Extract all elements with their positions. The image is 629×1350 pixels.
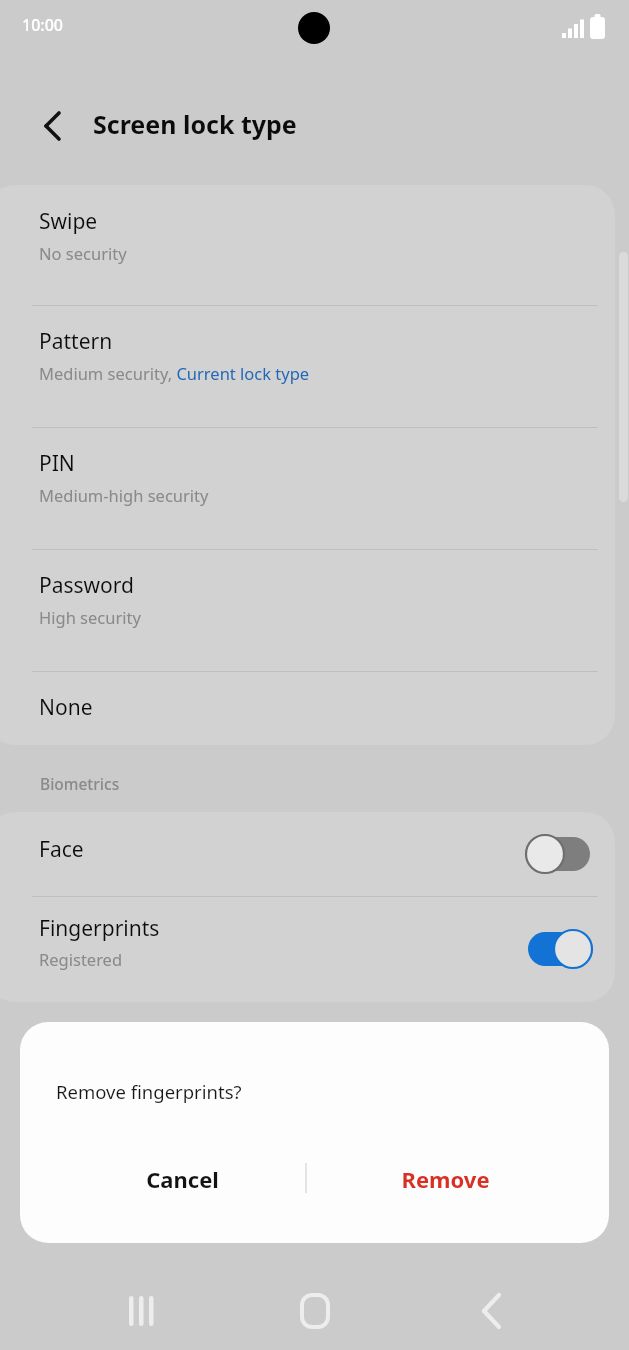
staticText: Registered — [39, 948, 123, 970]
staticText: Swipe — [39, 207, 98, 236]
staticText: Medium security, Current lock type — [39, 362, 310, 384]
staticText: Pattern — [39, 327, 113, 356]
button[interactable]: Back — [26, 100, 78, 152]
button[interactable]: Fingerprints on — [528, 927, 592, 971]
staticText: 10:00 — [22, 14, 63, 36]
button[interactable]: Remove — [320, 1146, 570, 1212]
staticText: Face — [39, 835, 84, 864]
staticText: Medium-high security — [39, 484, 209, 506]
staticText: High security — [39, 606, 141, 628]
button[interactable]: Password — [0, 549, 615, 671]
staticText: None — [39, 693, 93, 722]
button[interactable]: Recents — [105, 1286, 177, 1336]
button[interactable]: None — [0, 671, 615, 745]
staticText: No security — [39, 242, 127, 264]
staticText: PIN — [39, 449, 75, 478]
button[interactable]: Face — [0, 812, 615, 896]
button[interactable]: Pattern — [0, 305, 615, 427]
staticText: Password — [39, 571, 134, 600]
button[interactable]: Back — [455, 1286, 527, 1336]
button[interactable]: PIN — [0, 427, 615, 549]
button[interactable]: Fingerprints — [0, 896, 615, 1002]
button[interactable]: Biometrics — [40, 773, 120, 794]
staticText: Cancel — [146, 1164, 219, 1194]
button[interactable]: Face off — [528, 832, 592, 876]
staticText: Biometrics — [40, 773, 120, 794]
staticText: Remove fingerprints? — [56, 1079, 242, 1104]
button[interactable]: Home — [279, 1286, 351, 1336]
staticText: Remove — [401, 1164, 490, 1194]
staticText: Screen lock type — [93, 107, 297, 141]
button[interactable]: Swipe — [0, 185, 615, 307]
button[interactable]: Cancel — [60, 1146, 305, 1212]
staticText: Fingerprints — [39, 914, 160, 943]
